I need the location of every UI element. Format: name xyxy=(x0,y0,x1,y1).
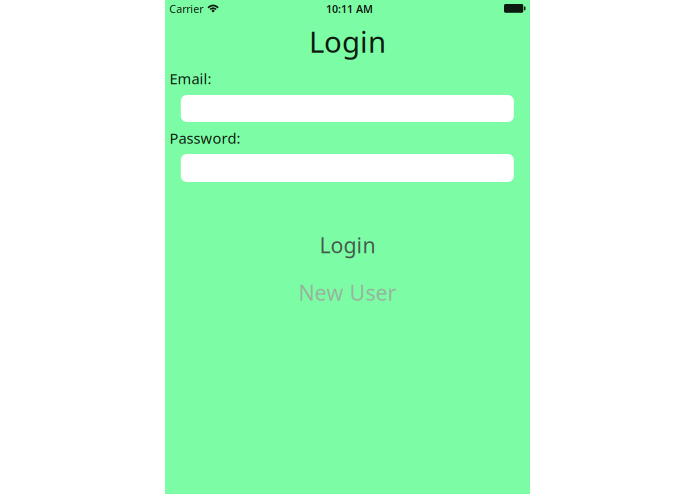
staticText: Carrier xyxy=(169,2,203,16)
button[interactable]: Login xyxy=(257,230,437,260)
button[interactable]: Password xyxy=(181,154,514,182)
button[interactable]: Email xyxy=(181,95,514,122)
button[interactable]: New User xyxy=(257,277,437,307)
staticText: Login xyxy=(309,22,386,61)
staticText: Login xyxy=(319,231,375,259)
staticText: Password: xyxy=(170,128,241,148)
staticText: New User xyxy=(298,278,396,307)
staticText: Email: xyxy=(170,69,212,88)
staticText: 10:11 AM xyxy=(326,2,373,16)
